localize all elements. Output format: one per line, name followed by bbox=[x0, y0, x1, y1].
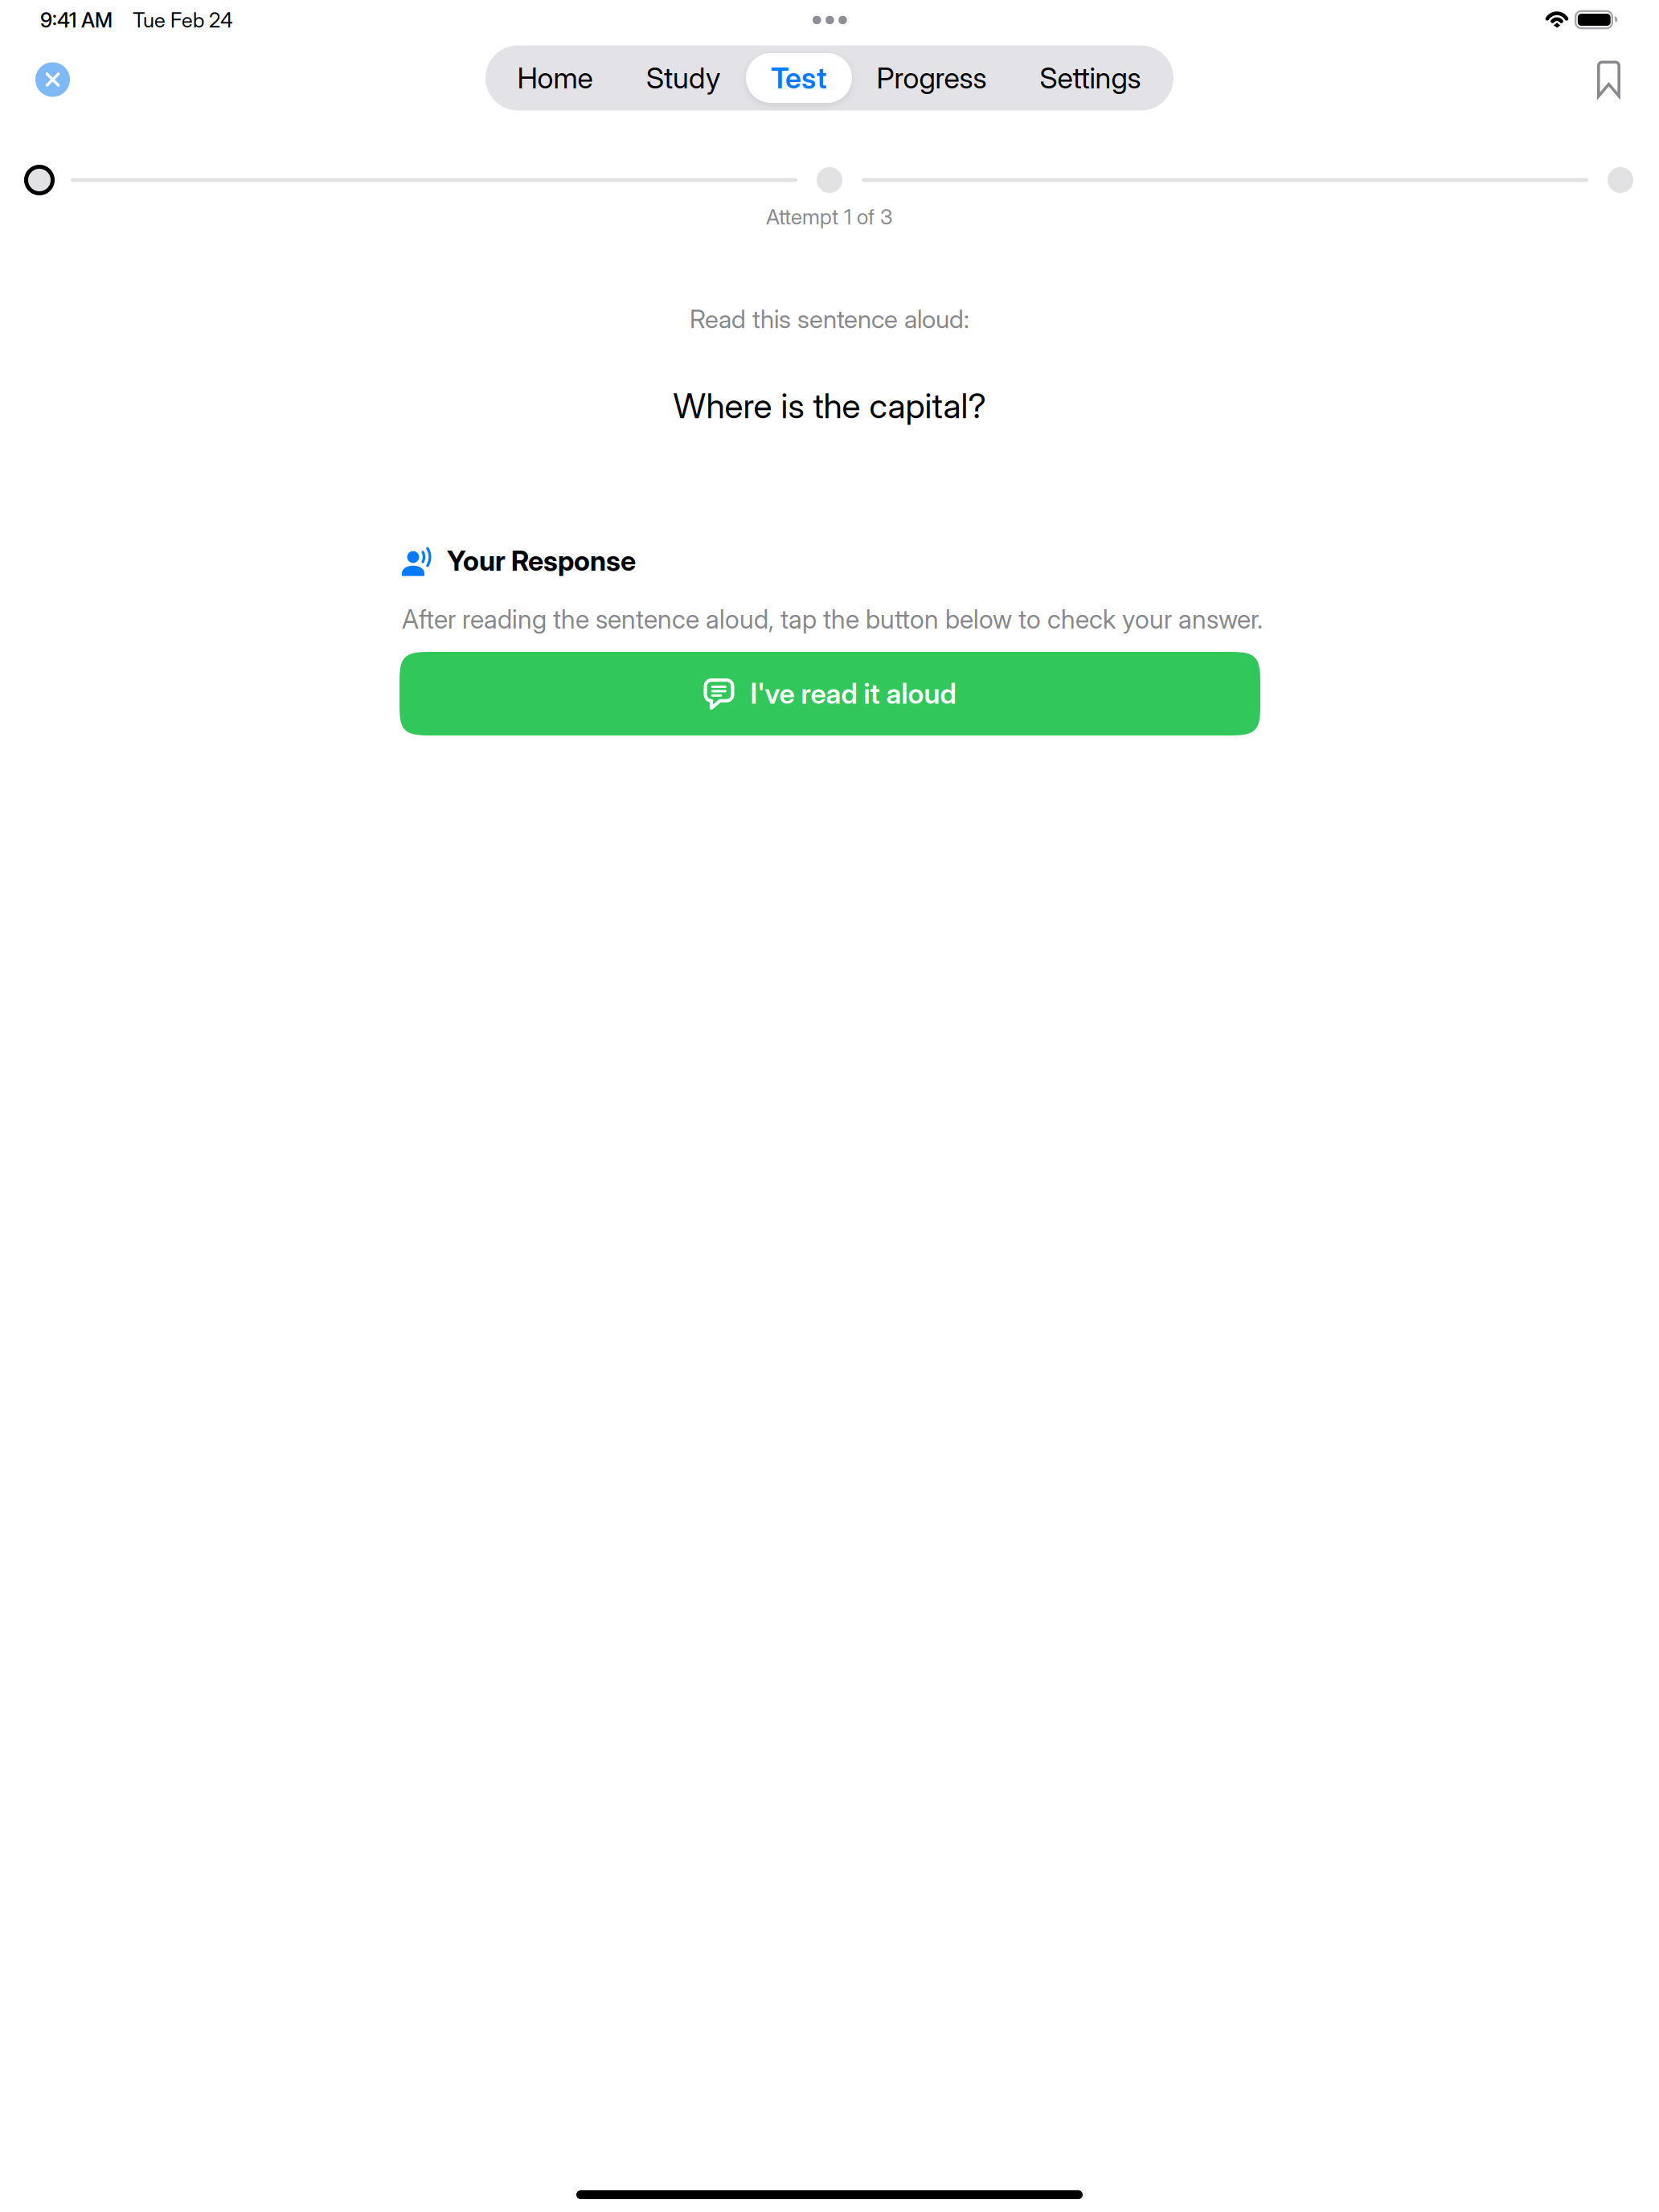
button[interactable]: Close bbox=[35, 62, 70, 97]
staticText: Test bbox=[771, 60, 827, 95]
staticText: Attempt 1 of 3 bbox=[766, 204, 893, 229]
staticText: 9:41 AM bbox=[40, 8, 113, 32]
staticText: Where is the capital? bbox=[673, 385, 986, 426]
staticText: Study bbox=[646, 60, 720, 95]
staticText: Progress bbox=[877, 60, 987, 95]
staticText: Your Response bbox=[447, 544, 636, 577]
button[interactable]: Study bbox=[621, 53, 746, 103]
button[interactable]: I've read it aloud bbox=[399, 652, 1260, 735]
staticText: After reading the sentence aloud, tap th… bbox=[402, 604, 1263, 635]
button[interactable]: Bookmark bbox=[1586, 49, 1632, 109]
button[interactable]: Home bbox=[490, 53, 621, 103]
staticText: Tue Feb 24 bbox=[133, 8, 233, 32]
button[interactable]: Settings bbox=[1011, 53, 1169, 103]
staticText: Read this sentence aloud: bbox=[690, 304, 969, 334]
staticText: Settings bbox=[1040, 60, 1141, 95]
button[interactable]: Progress bbox=[852, 53, 1011, 103]
staticText: Home bbox=[517, 60, 593, 95]
staticText: I've read it aloud bbox=[750, 677, 956, 710]
button[interactable]: Test bbox=[746, 53, 852, 103]
